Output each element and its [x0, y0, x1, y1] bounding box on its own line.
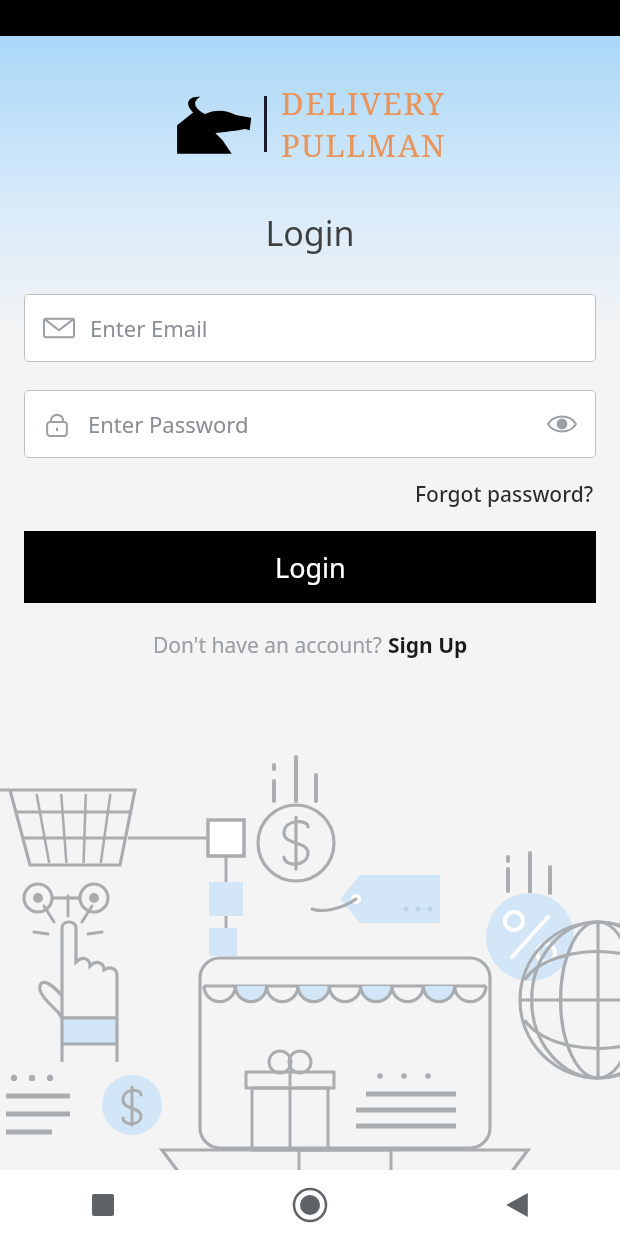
button[interactable]: Enter Password — [24, 390, 596, 458]
button[interactable]: Enter Email — [24, 294, 596, 362]
button[interactable]: Home — [206, 1170, 413, 1240]
button[interactable]: Sign Up — [388, 631, 468, 660]
staticText: Sign Up — [388, 631, 468, 660]
staticText: Enter Password — [88, 409, 249, 439]
staticText: Login — [0, 210, 620, 256]
button[interactable]: Back — [413, 1170, 620, 1240]
staticText: Login — [275, 549, 346, 586]
button[interactable]: Show password — [540, 402, 584, 446]
button[interactable]: Recent apps — [0, 1170, 206, 1240]
staticText: Enter Email — [90, 313, 208, 343]
staticText: Forgot password? — [415, 480, 594, 509]
staticText: PULLMAN — [281, 124, 447, 166]
button[interactable]: Forgot password? — [413, 474, 596, 515]
staticText: DELIVERY — [281, 82, 446, 124]
button[interactable]: Login — [24, 531, 596, 603]
staticText: Don't have an account? — [153, 631, 388, 660]
